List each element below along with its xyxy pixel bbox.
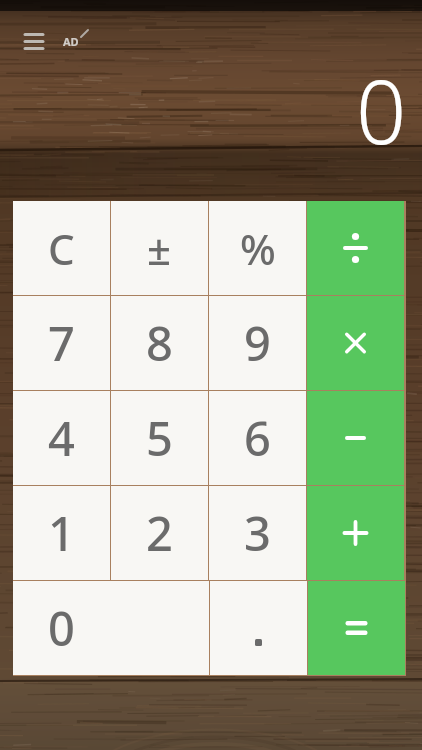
staticText: 5 [146, 406, 173, 470]
button[interactable]: 7 [13, 296, 110, 390]
button[interactable]: AD [63, 34, 79, 49]
button[interactable] [308, 581, 405, 675]
staticText: 9 [244, 311, 271, 375]
staticText: 2 [146, 501, 173, 565]
button[interactable]: 8 [111, 296, 208, 390]
staticText: ± [147, 220, 172, 277]
button[interactable]: ± [111, 201, 208, 295]
button[interactable]: C [13, 201, 110, 295]
staticText: 4 [48, 406, 75, 470]
button[interactable]: 6 [209, 391, 306, 485]
button[interactable] [307, 201, 404, 295]
button[interactable]: 3 [209, 486, 306, 580]
button[interactable] [18, 27, 50, 55]
staticText: % [240, 220, 276, 277]
button[interactable]: 0 [13, 581, 209, 675]
button[interactable] [307, 296, 404, 390]
button[interactable]: 5 [111, 391, 208, 485]
staticText: 3 [244, 501, 271, 565]
staticText: 0 [48, 596, 75, 660]
button[interactable]: 1 [13, 486, 110, 580]
button[interactable]: 9 [209, 296, 306, 390]
staticText: 7 [48, 311, 75, 375]
staticText: 0 [356, 50, 407, 170]
button[interactable]: 2 [111, 486, 208, 580]
staticText: 6 [244, 406, 271, 470]
staticText: 1 [48, 501, 75, 565]
button[interactable]: 4 [13, 391, 110, 485]
staticText: C [48, 220, 75, 277]
staticText: 8 [146, 311, 173, 375]
button[interactable] [307, 486, 404, 580]
button[interactable]: % [209, 201, 306, 295]
button[interactable] [307, 391, 404, 485]
button[interactable] [210, 581, 307, 675]
